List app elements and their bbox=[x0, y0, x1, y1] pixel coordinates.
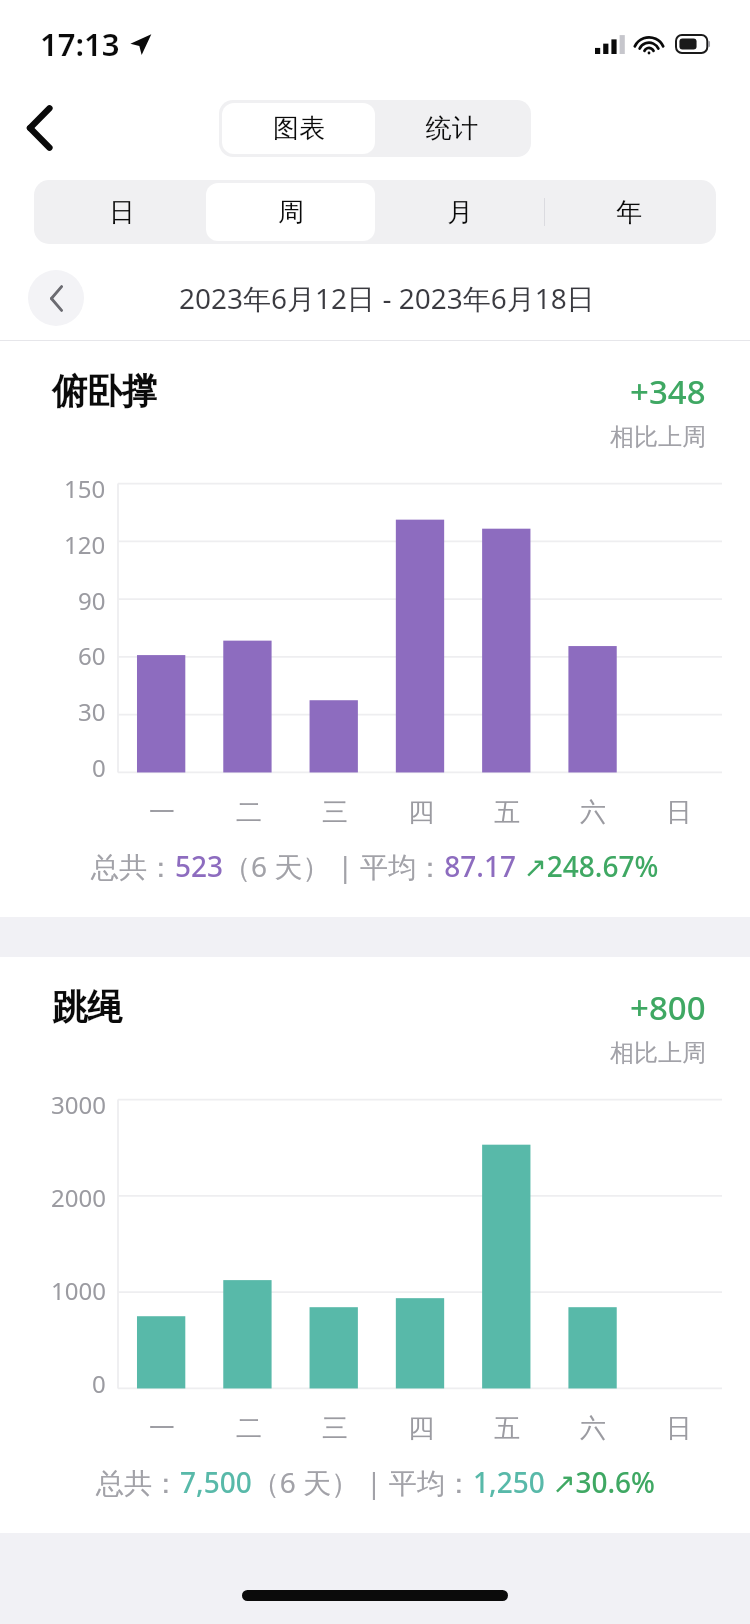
staticText: 日 bbox=[666, 796, 692, 829]
staticText: 总共：523（6 天） | 平均：87.17 ↗248.67% bbox=[91, 847, 659, 885]
staticText: 90 bbox=[78, 584, 106, 617]
staticText: 120 bbox=[64, 528, 106, 561]
staticText: 3000 bbox=[51, 1088, 106, 1121]
staticText: 0 bbox=[92, 751, 106, 784]
staticText: 四 bbox=[408, 796, 434, 829]
button[interactable]: 图表 bbox=[222, 103, 375, 154]
staticText: 五 bbox=[494, 1412, 520, 1445]
button[interactable]: Back bbox=[8, 97, 70, 159]
staticText: 二 bbox=[236, 796, 262, 829]
staticText: 0 bbox=[92, 1367, 106, 1400]
staticText: 六 bbox=[580, 796, 606, 829]
staticText: 1000 bbox=[51, 1274, 106, 1307]
button[interactable]: Previous week bbox=[28, 270, 84, 326]
staticText: 四 bbox=[408, 1412, 434, 1445]
staticText: 2000 bbox=[51, 1181, 106, 1214]
staticText: 跳绳 bbox=[52, 985, 122, 1029]
staticText: 一 bbox=[149, 1412, 175, 1445]
staticText: 五 bbox=[494, 796, 520, 829]
staticText: 150 bbox=[64, 472, 106, 505]
button[interactable]: 年 bbox=[544, 183, 713, 241]
staticText: 30 bbox=[78, 695, 106, 728]
staticText: 周 bbox=[278, 196, 304, 229]
staticText: 日 bbox=[666, 1412, 692, 1445]
staticText: 三 bbox=[322, 1412, 348, 1445]
staticText: 日 bbox=[109, 196, 135, 229]
button[interactable]: 日 bbox=[37, 183, 206, 241]
staticText: 年 bbox=[616, 196, 642, 229]
staticText: 三 bbox=[322, 796, 348, 829]
button[interactable]: 统计 bbox=[375, 103, 528, 154]
staticText: 60 bbox=[78, 639, 106, 672]
staticText: 二 bbox=[236, 1412, 262, 1445]
staticText: 一 bbox=[149, 796, 175, 829]
staticText: 总共：7,500（6 天） | 平均：1,250 ↗30.6% bbox=[96, 1463, 655, 1501]
button[interactable]: 周 bbox=[206, 183, 375, 241]
staticText: 图表 bbox=[273, 112, 325, 145]
staticText: 六 bbox=[580, 1412, 606, 1445]
staticText: +348 bbox=[630, 369, 706, 414]
staticText: 相比上周 bbox=[610, 422, 706, 452]
staticText: 17:13 bbox=[40, 23, 120, 65]
staticText: +800 bbox=[630, 985, 706, 1030]
staticText: 俯卧撑 bbox=[52, 369, 157, 413]
button[interactable]: 月 bbox=[375, 183, 544, 241]
staticText: 2023年6月12日 - 2023年6月18日 bbox=[179, 279, 595, 317]
staticText: 月 bbox=[447, 196, 473, 229]
staticText: 统计 bbox=[426, 112, 478, 145]
staticText: 相比上周 bbox=[610, 1038, 706, 1068]
